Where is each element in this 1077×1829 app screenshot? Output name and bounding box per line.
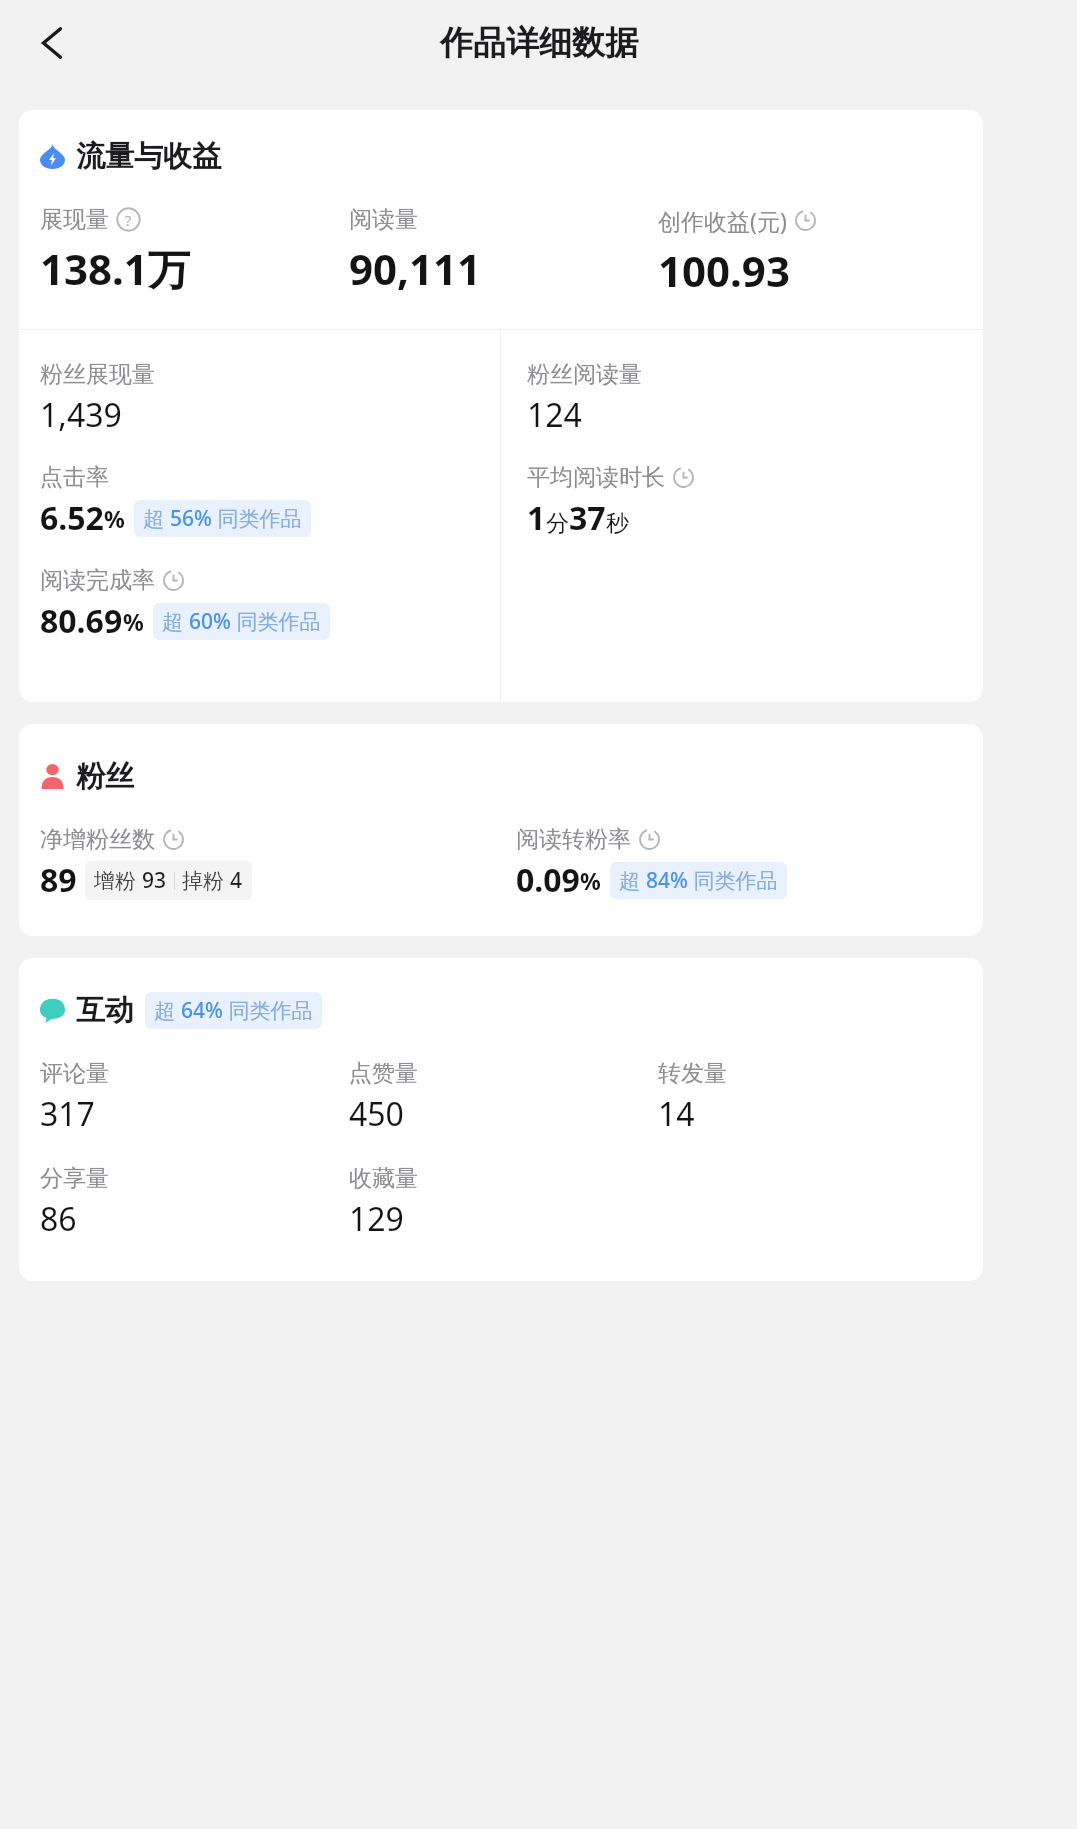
staticText: 流量与收益	[76, 138, 221, 175]
staticText: 138.1万	[40, 240, 190, 297]
staticText: 0.09	[516, 858, 580, 902]
staticText: %	[104, 503, 125, 534]
staticText: 同类作品	[688, 866, 778, 895]
staticText: %	[580, 865, 601, 896]
staticText: 秒	[606, 509, 629, 538]
staticText: 平均阅读时长	[527, 463, 665, 492]
staticText: 创作收益(元)	[658, 205, 787, 236]
staticText: 掉粉	[182, 866, 230, 895]
staticText: 37	[569, 496, 606, 540]
staticText: %	[123, 606, 144, 637]
staticText: 90,111	[349, 240, 482, 297]
staticText: 净增粉丝数	[40, 825, 155, 854]
staticText: 56%	[170, 504, 212, 533]
button[interactable]: 流量与收益	[40, 138, 221, 175]
staticText: 评论量	[40, 1059, 109, 1088]
staticText: 1,439	[40, 393, 122, 437]
staticText: 14	[658, 1092, 695, 1136]
staticText: 100.93	[658, 242, 790, 299]
staticText: 收藏量	[349, 1164, 418, 1193]
staticText: 4	[230, 866, 243, 895]
staticText: 450	[349, 1092, 404, 1136]
staticText: 作品详细数据	[440, 22, 638, 64]
staticText: 阅读转粉率	[516, 825, 631, 854]
staticText: 阅读完成率	[40, 566, 155, 595]
staticText: 60%	[189, 607, 231, 636]
button[interactable]: 超	[153, 603, 330, 640]
staticText: 同类作品	[223, 996, 313, 1025]
staticText: 粉丝	[76, 758, 134, 795]
staticText: 互动	[76, 992, 134, 1029]
button[interactable]: 超	[145, 992, 322, 1029]
staticText: 同类作品	[212, 504, 302, 533]
staticText: 129	[349, 1197, 404, 1241]
staticText: 粉丝阅读量	[527, 360, 642, 389]
staticText: 64%	[181, 996, 223, 1025]
staticText: 粉丝展现量	[40, 360, 155, 389]
staticText: 超	[162, 607, 189, 636]
staticText: 分	[546, 509, 569, 538]
button[interactable]: 返回	[24, 14, 82, 72]
staticText: 86	[40, 1197, 77, 1241]
staticText: 点击率	[40, 463, 109, 492]
button[interactable]: 互动	[40, 992, 322, 1029]
staticText: 93	[142, 866, 167, 895]
staticText: 超	[154, 996, 181, 1025]
staticText: 124	[527, 393, 582, 437]
staticText: 超	[143, 504, 170, 533]
staticText: 6.52	[40, 496, 104, 540]
staticText: 转发量	[658, 1059, 727, 1088]
staticText: 超	[619, 866, 646, 895]
staticText: 阅读量	[349, 205, 418, 234]
button[interactable]: 粉丝	[40, 758, 134, 795]
button[interactable]: 超	[134, 500, 311, 537]
other: 帮助说明	[116, 207, 141, 232]
staticText: 增粉	[94, 866, 142, 895]
staticText: 89	[40, 858, 77, 902]
staticText: 317	[40, 1092, 95, 1136]
button[interactable]: 超	[610, 862, 787, 899]
staticText: 80.69	[40, 599, 123, 643]
staticText: 1	[527, 496, 546, 540]
staticText: 同类作品	[231, 607, 321, 636]
staticText: 84%	[646, 866, 688, 895]
staticText: ?	[125, 210, 132, 230]
staticText: 分享量	[40, 1164, 109, 1193]
staticText: 点赞量	[349, 1059, 418, 1088]
staticText: 展现量	[40, 205, 109, 234]
